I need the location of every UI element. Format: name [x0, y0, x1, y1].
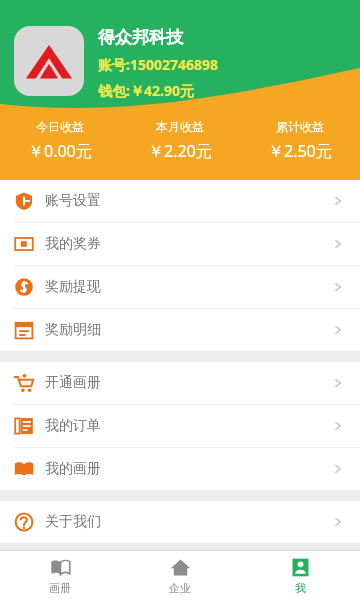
- staticText: 累计收益: [276, 119, 324, 134]
- staticText: 我: [295, 581, 306, 595]
- button[interactable]: 开通画册: [0, 362, 360, 404]
- staticText: ￥2.20元: [148, 140, 212, 162]
- staticText: 我的奖券: [45, 235, 101, 253]
- staticText: 奖励提现: [45, 278, 101, 296]
- staticText: 账号:15002746898: [98, 55, 219, 74]
- button[interactable]: 奖励提现: [0, 266, 360, 308]
- staticText: 账号设置: [45, 192, 101, 210]
- staticText: 得众邦科技: [98, 27, 183, 48]
- staticText: 开通画册: [45, 374, 101, 392]
- staticText: 画册: [49, 581, 71, 595]
- staticText: 今日收益: [36, 119, 84, 134]
- button[interactable]: 关于我们: [0, 501, 360, 543]
- button[interactable]: 奖励明细: [0, 309, 360, 351]
- button[interactable]: 企业: [120, 551, 240, 600]
- button[interactable]: 我: [240, 551, 360, 600]
- staticText: 本月收益: [156, 119, 204, 134]
- staticText: 我的订单: [45, 417, 101, 435]
- staticText: 企业: [169, 581, 191, 595]
- staticText: 关于我们: [45, 513, 101, 531]
- staticText: 奖励明细: [45, 321, 101, 339]
- button[interactable]: 账号设置: [0, 180, 360, 222]
- button[interactable]: 我的画册: [0, 448, 360, 490]
- staticText: ￥2.50元: [268, 140, 332, 162]
- staticText: 我的画册: [45, 460, 101, 478]
- staticText: 钱包:￥42.90元: [98, 81, 194, 100]
- button[interactable]: 我的订单: [0, 405, 360, 447]
- staticText: ￥0.00元: [28, 140, 92, 162]
- button[interactable]: 画册: [0, 551, 120, 600]
- button[interactable]: 我的奖券: [0, 223, 360, 265]
